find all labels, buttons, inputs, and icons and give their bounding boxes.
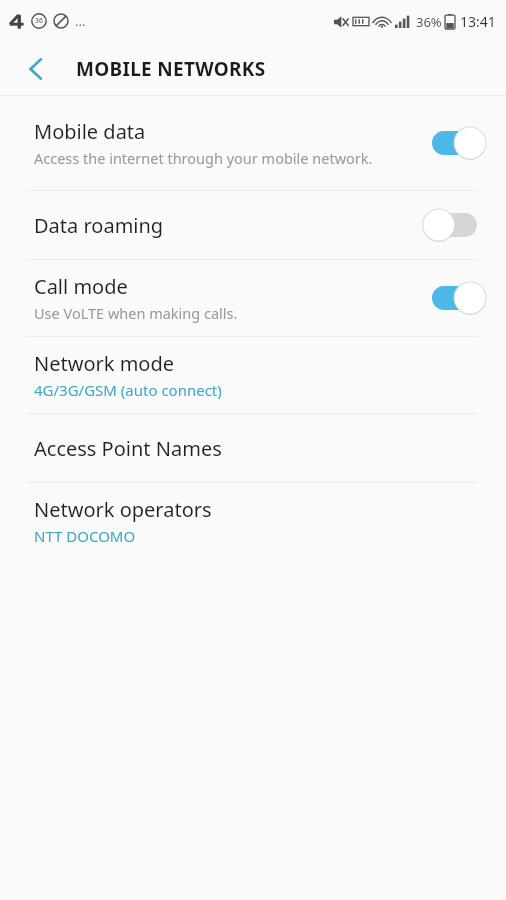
button[interactable]: On (432, 281, 488, 315)
staticText: Call mode (34, 273, 128, 300)
staticText: Data roaming (34, 212, 164, 239)
button[interactable]: Mobile data (0, 96, 506, 190)
button[interactable]: On (432, 126, 488, 160)
staticText: NTT DOCOMO (34, 526, 136, 546)
button[interactable]: Off (432, 208, 488, 242)
button[interactable]: Access Point Names (0, 414, 506, 482)
staticText: Network mode (34, 350, 175, 377)
button[interactable]: Call mode (0, 260, 506, 336)
button[interactable]: Network operators (0, 483, 506, 559)
staticText: 13:41 (460, 12, 496, 31)
button[interactable]: Data roaming (0, 191, 506, 259)
staticText: 36% (416, 13, 442, 31)
staticText: 4G/3G/GSM (auto connect) (34, 380, 222, 400)
staticText: Network operators (34, 496, 212, 523)
button[interactable]: Network mode (0, 337, 506, 413)
staticText: Access Point Names (34, 435, 222, 462)
staticText: Access the internet through your mobile … (34, 148, 373, 168)
button[interactable]: Navigate up (14, 48, 56, 90)
staticText: 36 (35, 16, 44, 26)
staticText: Use VoLTE when making calls. (34, 303, 238, 323)
staticText: MOBILE NETWORKS (76, 56, 266, 82)
staticText: ... (75, 12, 86, 30)
staticText: Mobile data (34, 118, 146, 145)
